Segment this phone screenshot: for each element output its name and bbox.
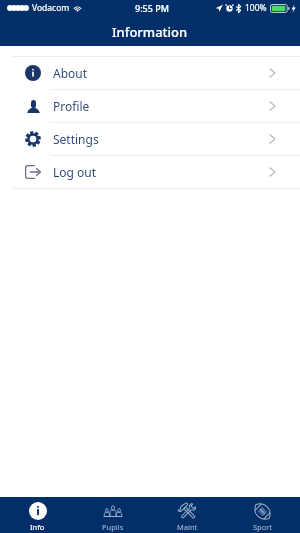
staticText: Sport	[253, 522, 273, 532]
button[interactable]: Log out	[0, 156, 300, 188]
button[interactable]: Maint	[150, 497, 225, 533]
staticText: Settings	[53, 131, 99, 147]
button[interactable]: Profile	[0, 90, 300, 122]
staticText: 9:55 PM	[135, 2, 169, 14]
staticText: Information	[112, 23, 188, 41]
button[interactable]: About	[0, 57, 300, 89]
button[interactable]: Sport	[225, 497, 300, 533]
staticText: Maint	[177, 522, 198, 532]
staticText: Pupils	[102, 522, 124, 532]
staticText: Vodacom	[32, 2, 70, 14]
button[interactable]: Pupils	[75, 497, 150, 533]
button[interactable]: Settings	[0, 123, 300, 155]
button[interactable]: Info	[0, 497, 75, 533]
staticText: About	[53, 65, 88, 81]
staticText: Info	[30, 522, 45, 532]
staticText: Profile	[53, 98, 90, 114]
staticText: 100%	[245, 2, 267, 14]
staticText: Log out	[53, 164, 97, 180]
